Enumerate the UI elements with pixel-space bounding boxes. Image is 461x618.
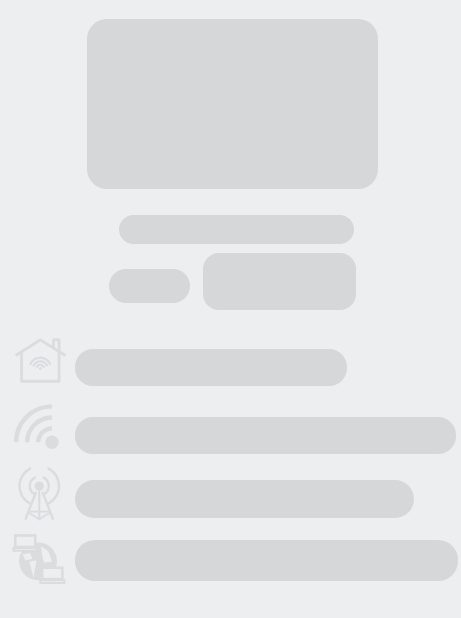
button[interactable]: Home network — [14, 337, 70, 393]
button[interactable]: Wi-Fi — [14, 403, 66, 455]
button[interactable]: Internet — [8, 527, 72, 591]
button[interactable]: Cell tower — [12, 464, 70, 522]
